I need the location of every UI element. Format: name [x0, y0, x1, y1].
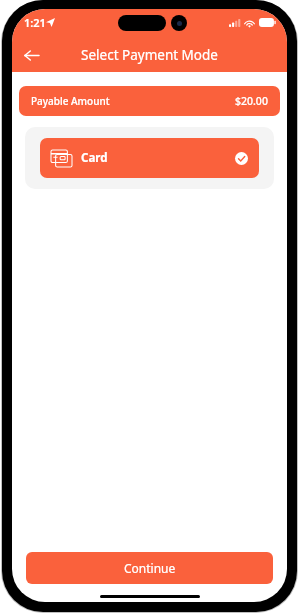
button[interactable]: Back	[16, 40, 46, 70]
staticText: Payable Amount	[31, 94, 110, 108]
staticText: $20.00	[235, 94, 268, 108]
staticText: Continue	[124, 560, 176, 576]
staticText: Select Payment Mode	[81, 46, 218, 64]
staticText: 1:21	[24, 15, 46, 30]
staticText: Card	[81, 150, 108, 166]
button[interactable]: Payable Amount	[19, 86, 280, 116]
button[interactable]: Continue	[26, 552, 273, 584]
button[interactable]: Card	[40, 138, 259, 178]
